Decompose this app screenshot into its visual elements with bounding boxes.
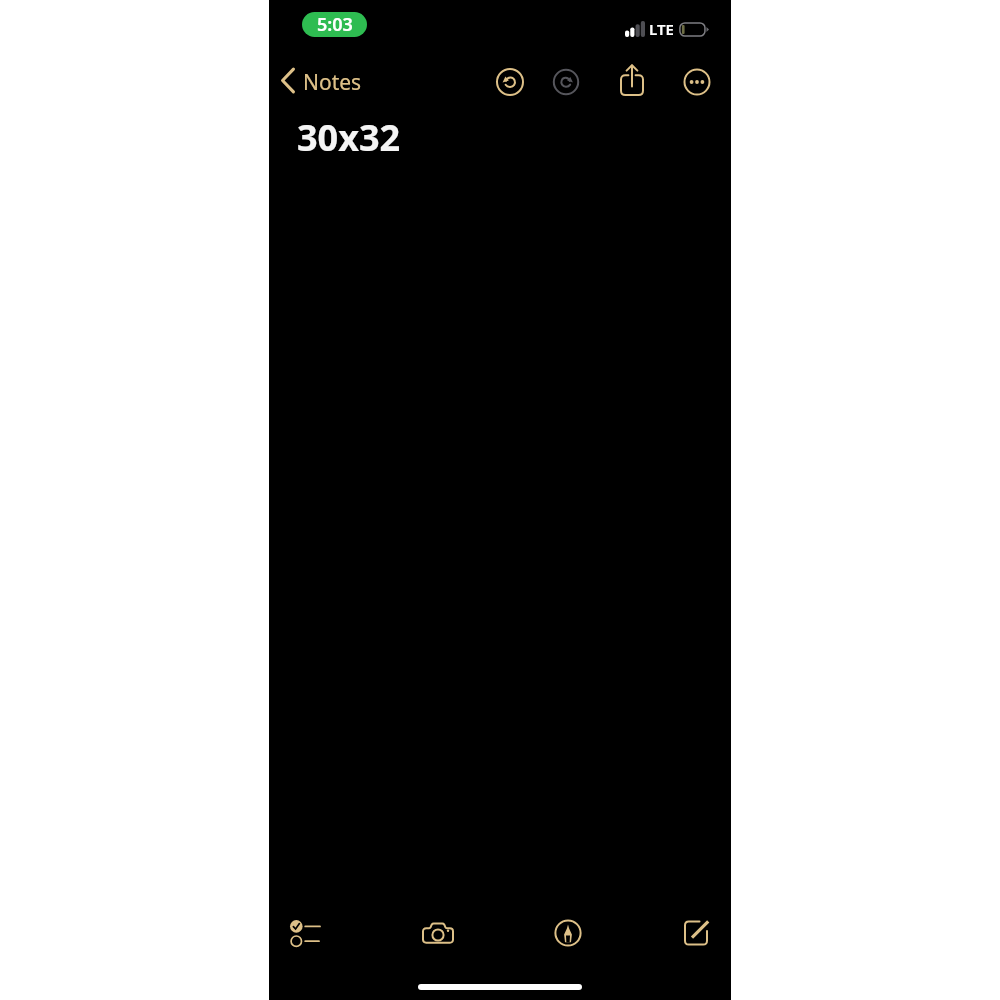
- staticText: Notes: [303, 68, 362, 97]
- button[interactable]: Share: [610, 60, 654, 104]
- button[interactable]: Notes: [275, 63, 367, 102]
- button[interactable]: Note body: [269, 105, 731, 900]
- button[interactable]: 5:03: [302, 12, 367, 37]
- button[interactable]: Checklist: [283, 911, 327, 955]
- button[interactable]: New note: [674, 911, 718, 955]
- button[interactable]: Undo: [488, 60, 532, 104]
- staticText: 5:03: [317, 12, 353, 37]
- staticText: 30x32: [297, 113, 401, 162]
- button[interactable]: Camera: [416, 911, 460, 955]
- button[interactable]: More options: [675, 60, 719, 104]
- button[interactable]: Markup: [546, 911, 590, 955]
- button[interactable]: Redo: [544, 60, 588, 104]
- staticText: LTE: [649, 19, 674, 39]
